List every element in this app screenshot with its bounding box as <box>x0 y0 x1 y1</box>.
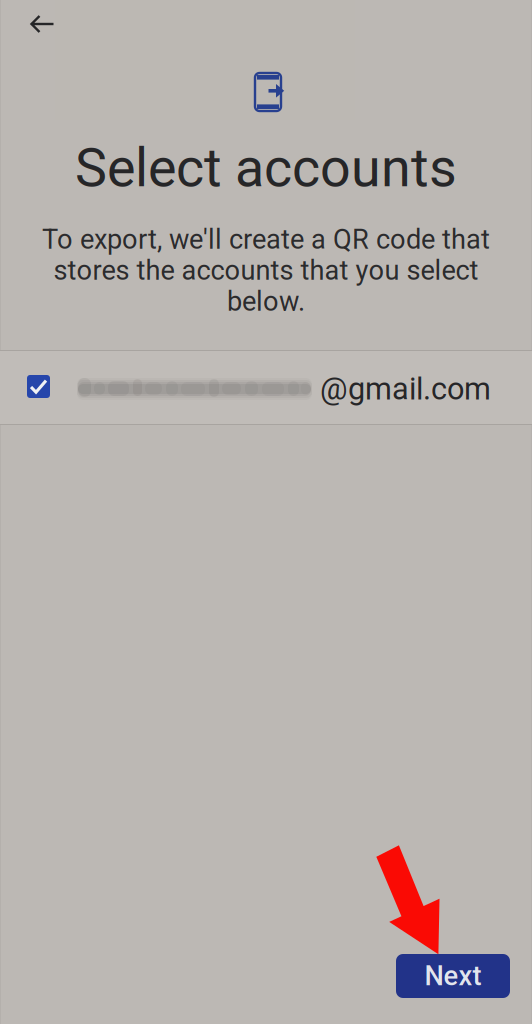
staticText: Select accounts <box>75 136 457 199</box>
staticText: Next <box>424 960 481 992</box>
staticText: To export, we'll create a QR code that <box>42 224 490 255</box>
staticText: stores the accounts that you select <box>53 255 478 286</box>
button[interactable]: Back <box>0 0 69 46</box>
staticText: @gmail.com <box>320 371 491 407</box>
button[interactable]: @gmail.com <box>0 350 532 425</box>
staticText: below. <box>227 286 305 317</box>
button[interactable]: Next <box>396 954 510 998</box>
